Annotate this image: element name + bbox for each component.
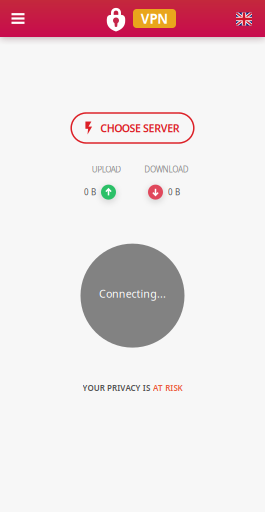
staticText: Connecting... (99, 286, 166, 301)
button[interactable]: Menu (1, 0, 35, 37)
staticText: 0 B (168, 187, 180, 197)
staticText: DOWNLOAD (144, 164, 189, 175)
staticText: CHOOSE SERVER (100, 121, 180, 135)
button[interactable]: Connecting... (80, 244, 184, 348)
button[interactable]: Change country (227, 0, 261, 37)
staticText: VPN (141, 10, 168, 27)
staticText: 0 B (84, 187, 96, 197)
staticText: YOUR PRIVACY IS (82, 383, 150, 393)
staticText: UPLOAD (92, 164, 121, 175)
staticText: AT RISK (153, 383, 182, 393)
button[interactable]: CHOOSE SERVER (71, 113, 194, 143)
